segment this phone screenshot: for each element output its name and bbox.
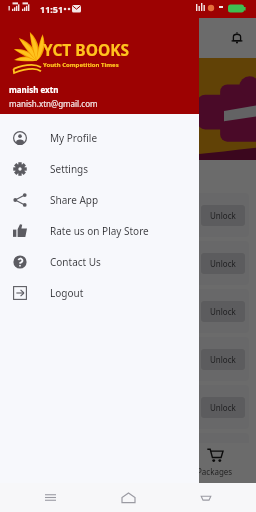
button[interactable]: Recents xyxy=(35,483,65,512)
staticText: Contact Us xyxy=(50,255,101,269)
button[interactable]: Settings xyxy=(0,153,199,184)
staticText: Latest Test Series xyxy=(10,168,106,183)
button[interactable]: Rate us on Play Store xyxy=(0,215,199,246)
staticText: Logout xyxy=(50,286,84,300)
button[interactable]: Unlock xyxy=(201,301,245,322)
staticText: YCT BOOKS xyxy=(43,39,129,60)
button[interactable]: Unlock xyxy=(7,289,249,333)
button[interactable]: Notifications xyxy=(224,25,250,51)
button[interactable]: Unlock xyxy=(201,205,245,226)
button[interactable]: Home xyxy=(113,483,143,512)
button[interactable]: Unlock xyxy=(201,397,245,418)
button[interactable]: Unlock xyxy=(201,445,245,466)
staticText: Settings xyxy=(50,162,89,176)
button[interactable]: Unlock xyxy=(7,385,249,429)
staticText: Youth Competition Times xyxy=(43,61,119,69)
button[interactable]: Back xyxy=(191,483,221,512)
button[interactable]: Unlock xyxy=(7,433,249,477)
button[interactable]: Contact Us xyxy=(0,246,199,277)
staticText: manish extn xyxy=(9,84,59,95)
staticText: Unlock xyxy=(210,306,236,317)
staticText: 11:51 xyxy=(40,3,64,15)
button[interactable]: Unlock xyxy=(7,241,249,285)
staticText: Unlock xyxy=(210,354,236,365)
button[interactable]: Logout xyxy=(0,277,199,308)
button[interactable]: Unlock xyxy=(7,193,249,237)
staticText: Unlock xyxy=(210,210,236,221)
staticText: Share App xyxy=(50,193,99,207)
staticText: manish.xtn@gmail.com xyxy=(9,98,98,109)
staticText: Packages xyxy=(197,466,233,477)
staticText: My Profile xyxy=(50,131,98,145)
button[interactable]: Packages xyxy=(188,443,242,480)
staticText: Unlock xyxy=(210,258,236,269)
staticText: Unlock xyxy=(210,402,236,413)
button[interactable]: Unlock xyxy=(201,349,245,370)
button[interactable]: Share App xyxy=(0,184,199,215)
staticText: Unlock xyxy=(210,450,236,461)
button[interactable]: My Profile xyxy=(0,122,199,153)
button[interactable]: Unlock xyxy=(7,337,249,381)
staticText: Rate us on Play Store xyxy=(50,224,149,238)
button[interactable]: Unlock xyxy=(201,253,245,274)
